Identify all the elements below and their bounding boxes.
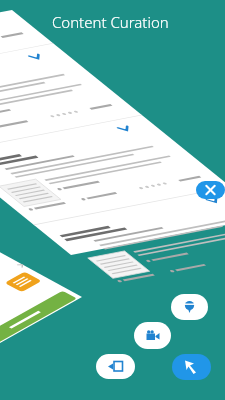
button[interactable]: Location xyxy=(171,294,208,320)
button[interactable]: Open in new xyxy=(96,354,135,379)
staticText: Content Curation xyxy=(52,12,169,32)
button[interactable]: Close xyxy=(196,181,225,199)
button[interactable]: Cursor xyxy=(172,354,211,380)
button[interactable]: Video xyxy=(134,322,171,349)
